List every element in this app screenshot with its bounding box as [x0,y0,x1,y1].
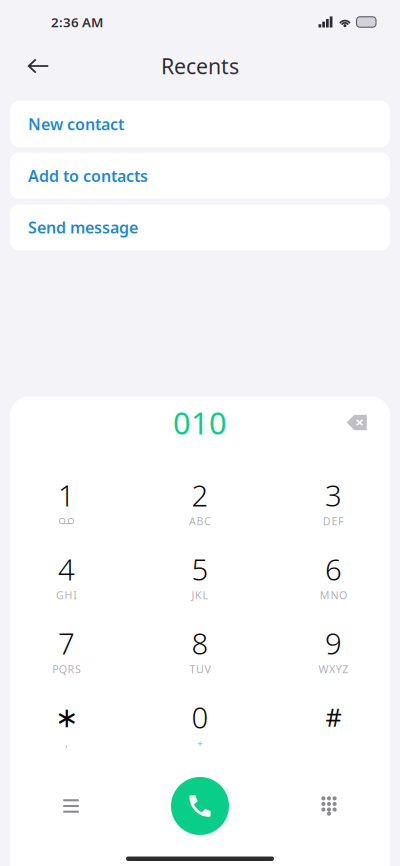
staticText: WXYZ [318,662,348,676]
staticText: 9 [325,623,342,662]
staticText: 6 [325,549,342,588]
staticText: Add to contacts [28,165,148,186]
button[interactable]: Back [0,44,77,88]
staticText: 010 [173,402,227,443]
button[interactable]: 9 [283,630,383,678]
button[interactable]: 7 [17,630,117,678]
staticText: 2 [191,475,208,514]
staticText: + [197,736,203,750]
staticText: Recents [161,52,239,80]
button[interactable]: 4 [17,556,117,604]
button[interactable]: Add to contacts [10,153,390,199]
staticText: PQRS [52,662,81,676]
staticText: 4 [58,549,75,588]
staticText: ∗ [55,702,78,733]
staticText: ABC [189,514,211,528]
staticText: MNO [320,588,347,602]
button[interactable]: Delete [335,401,379,443]
staticText: JKL [191,588,209,602]
button[interactable]: 0 [150,704,250,752]
staticText: New contact [28,113,124,135]
staticText: 0 [191,697,208,736]
staticText: Send message [28,217,138,238]
button[interactable]: # [283,704,383,752]
button[interactable]: Send message [10,204,390,250]
button[interactable]: Keypad [290,776,368,836]
staticText: 3 [325,475,342,514]
staticText: DEF [323,514,344,528]
button[interactable]: Call [169,776,231,836]
staticText: , [65,736,68,750]
staticText: GHI [56,588,77,602]
button[interactable]: 3 [283,482,383,530]
button[interactable]: 2 [150,482,250,530]
button[interactable]: ∗ [17,704,117,752]
staticText: 8 [191,623,208,662]
button[interactable]: 6 [283,556,383,604]
button[interactable]: 8 [150,630,250,678]
button[interactable]: More options [32,776,110,836]
staticText: # [325,700,341,734]
button[interactable]: New contact [10,101,390,147]
button[interactable]: 1 [17,482,117,530]
staticText: 5 [191,549,208,588]
button[interactable]: 5 [150,556,250,604]
staticText: 2:36 AM [51,13,103,31]
staticText: TUV [189,662,211,676]
staticText: 1 [58,475,75,514]
staticText: 7 [58,623,75,662]
